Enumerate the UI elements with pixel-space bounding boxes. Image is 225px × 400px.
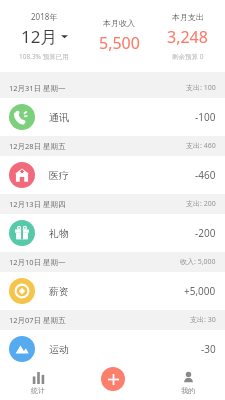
staticText: -100 [195,110,216,124]
staticText: 3,248 [167,26,208,48]
staticText: 支出: 200 [186,199,216,209]
staticText: 12月07日 星期五 [9,315,66,325]
button[interactable]: 统计 [0,365,75,400]
button[interactable]: 运动 [0,330,225,368]
staticText: 支出: 460 [186,141,216,151]
staticText: 2018年 [31,11,58,22]
staticText: 12月28日 星期五 [9,141,66,151]
button[interactable]: 通讯 [0,98,225,136]
staticText: 12月10日 星期一 [9,257,66,267]
button[interactable]: 薪资 [0,272,225,310]
button[interactable]: 2018年 [0,11,88,61]
staticText: 108.3% 预算已用 [19,52,69,61]
staticText: 收入: 5,000 [180,257,216,267]
staticText: -200 [195,226,216,240]
staticText: 12月 [21,25,58,48]
staticText: 本月收入 [103,18,135,28]
staticText: 我的 [181,386,195,395]
staticText: 支出: 30 [190,315,216,325]
staticText: 12月13日 星期四 [9,199,66,209]
staticText: 医疗 [49,169,69,182]
button[interactable]: 我的 [150,365,225,400]
button[interactable]: Add record [101,367,125,391]
staticText: 12月31日 星期一 [9,83,66,93]
staticText: 本月支出 [172,12,204,22]
staticText: +5,000 [184,284,216,298]
staticText: 支出: 100 [186,83,216,93]
staticText: 通讯 [49,111,69,124]
button[interactable]: 礼物 [0,214,225,252]
staticText: -460 [195,168,216,182]
staticText: 薪资 [49,285,69,298]
staticText: 5,500 [99,32,140,54]
staticText: 礼物 [49,227,69,240]
button[interactable]: 医疗 [0,156,225,194]
staticText: -30 [201,342,216,356]
staticText: 剩余预算 0 [172,52,204,61]
staticText: 统计 [31,386,45,395]
staticText: 运动 [49,343,69,356]
